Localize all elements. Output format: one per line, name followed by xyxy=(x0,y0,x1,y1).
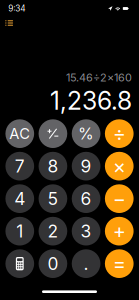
staticText: 3 xyxy=(81,221,92,242)
button[interactable]: 5 xyxy=(39,184,67,213)
staticText: 2 xyxy=(47,221,58,242)
button[interactable] xyxy=(5,249,34,278)
button[interactable]: − xyxy=(105,184,134,213)
button[interactable]: 4 xyxy=(5,184,34,213)
button[interactable]: + xyxy=(105,217,134,245)
button[interactable]: ÷ xyxy=(105,119,134,148)
staticText: 9 xyxy=(81,156,92,177)
button[interactable]: 3 xyxy=(72,217,100,245)
button[interactable]: 2 xyxy=(39,217,67,245)
staticText: + xyxy=(113,219,126,243)
button[interactable]: 6 xyxy=(72,184,100,213)
button[interactable]: % xyxy=(72,119,100,148)
button[interactable]: = xyxy=(105,249,134,278)
staticText: 15.46÷2×160 xyxy=(66,71,132,84)
staticText: 0 xyxy=(47,253,58,274)
staticText: AC xyxy=(9,125,30,142)
staticText: % xyxy=(78,124,94,143)
staticText: 1 xyxy=(16,221,23,242)
button[interactable]: AC xyxy=(5,119,34,148)
staticText: = xyxy=(113,252,126,276)
staticText: 7 xyxy=(15,156,25,177)
staticText: 1,236.8 xyxy=(50,86,132,116)
staticText: × xyxy=(113,154,126,178)
button[interactable]: 1 xyxy=(5,217,34,245)
button[interactable]: 8 xyxy=(39,152,67,180)
staticText: . xyxy=(84,253,89,274)
staticText: ÷ xyxy=(113,122,126,146)
button[interactable]: 0 xyxy=(39,249,67,278)
button[interactable] xyxy=(39,119,67,148)
button[interactable]: × xyxy=(105,152,134,180)
staticText: 5 xyxy=(47,188,58,209)
button[interactable]: 9 xyxy=(72,152,100,180)
button[interactable]: Menu xyxy=(3,18,15,28)
staticText: 4 xyxy=(14,188,25,209)
staticText: 9:34 xyxy=(8,3,25,13)
staticText: 6 xyxy=(81,188,92,209)
staticText: − xyxy=(113,187,126,211)
button[interactable]: 7 xyxy=(5,152,34,180)
staticText: 8 xyxy=(47,156,58,177)
button[interactable]: . xyxy=(72,249,100,278)
